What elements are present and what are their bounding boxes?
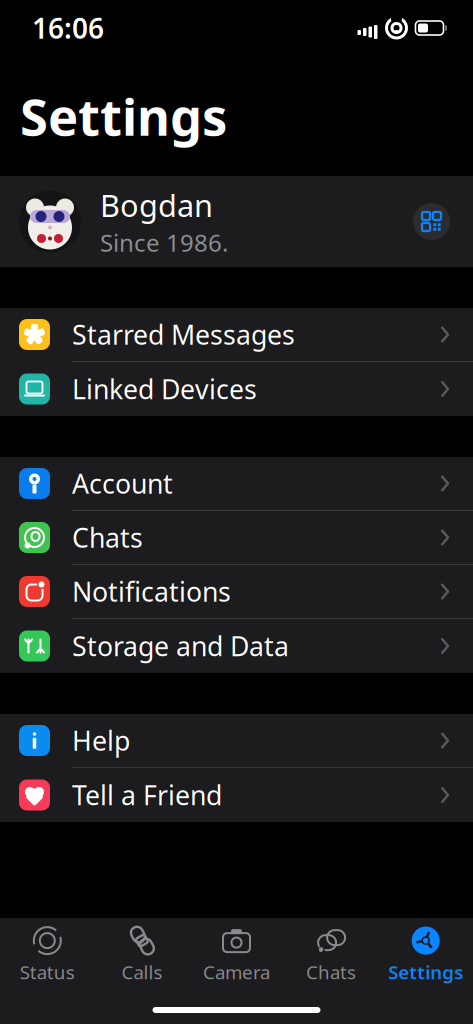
staticText: Storage and Data: [72, 628, 289, 664]
button[interactable]: Bogdan: [0, 176, 473, 267]
button[interactable]: Chats: [0, 511, 473, 565]
staticText: Account: [72, 466, 173, 501]
staticText: Tell a Friend: [72, 777, 222, 813]
button[interactable]: My QR code: [413, 203, 450, 240]
button[interactable]: Camera: [189, 927, 284, 983]
button[interactable]: Account: [0, 457, 473, 511]
button[interactable]: Calls: [95, 927, 189, 983]
staticText: Settings: [388, 960, 463, 984]
staticText: Chats: [306, 960, 356, 984]
button[interactable]: Notifications: [0, 565, 473, 619]
button[interactable]: Tell a Friend: [0, 768, 473, 822]
staticText: Since 1986.: [100, 226, 228, 258]
button[interactable]: Starred Messages: [0, 308, 473, 362]
staticText: Status: [20, 960, 75, 984]
staticText: Calls: [121, 960, 162, 984]
staticText: 16:06: [32, 9, 104, 47]
staticText: Starred Messages: [72, 317, 295, 352]
button[interactable]: Status: [0, 927, 95, 983]
button[interactable]: Help: [0, 714, 473, 768]
button[interactable]: Storage and Data: [0, 619, 473, 673]
staticText: Chats: [72, 520, 143, 555]
staticText: Settings: [20, 82, 227, 150]
button[interactable]: Linked Devices: [0, 362, 473, 416]
staticText: Help: [72, 723, 130, 758]
button[interactable]: Chats: [284, 927, 378, 983]
button[interactable]: Settings: [378, 927, 473, 983]
staticText: Camera: [203, 960, 270, 984]
staticText: Linked Devices: [72, 371, 257, 407]
staticText: Bogdan: [100, 185, 213, 225]
staticText: Notifications: [72, 574, 231, 609]
